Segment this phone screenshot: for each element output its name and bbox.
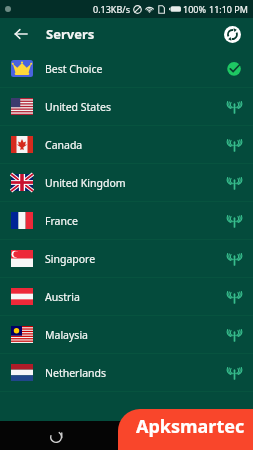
button[interactable]: United Kingdom	[0, 164, 253, 202]
staticText: Canada	[45, 138, 83, 152]
button[interactable]: Navigate up	[10, 23, 32, 45]
button[interactable]: Refresh	[224, 26, 241, 43]
staticText: Austria	[45, 290, 80, 304]
button[interactable]: Best Choice	[0, 50, 253, 88]
staticText: United Kingdom	[45, 176, 126, 190]
button[interactable]: Singapore	[0, 240, 253, 278]
button[interactable]: Back	[46, 426, 68, 448]
staticText: United States	[45, 100, 111, 114]
button[interactable]: Netherlands	[0, 354, 253, 392]
button[interactable]: France	[0, 202, 253, 240]
staticText: Malaysia	[45, 328, 88, 342]
staticText: Singapore	[45, 252, 96, 266]
button[interactable]: Malaysia	[0, 316, 253, 354]
staticText: Apksmartec	[136, 414, 245, 439]
staticText: Servers	[46, 25, 95, 43]
button[interactable]: United States	[0, 88, 253, 126]
staticText: Netherlands	[45, 366, 107, 380]
staticText: France	[45, 214, 78, 228]
button[interactable]: Canada	[0, 126, 253, 164]
button[interactable]: Austria	[0, 278, 253, 316]
staticText: Best Choice	[45, 62, 103, 76]
staticText: 11:10 PM	[209, 3, 248, 15]
staticText: 100%	[183, 3, 206, 15]
staticText: 0.13KB/s	[93, 3, 130, 15]
